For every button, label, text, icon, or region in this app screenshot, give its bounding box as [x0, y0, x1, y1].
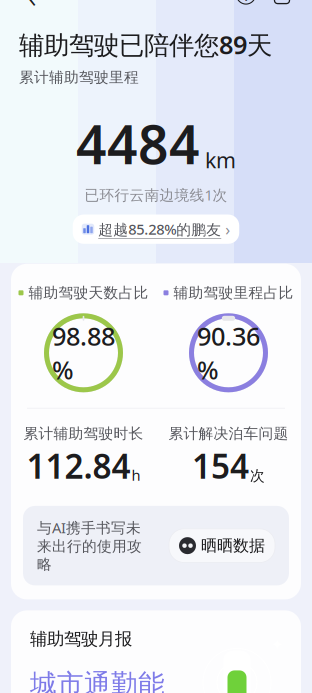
staticText: i — [244, 0, 248, 5]
staticText: 98.88% — [52, 319, 115, 386]
staticText: ‹ — [27, 0, 37, 18]
staticText: h — [131, 465, 140, 485]
staticText: 辅助驾驶已陪伴您89天 — [19, 28, 272, 61]
staticText: 城市通勤能量 — [30, 668, 165, 693]
staticText: 累计辅助驾驶时长 — [23, 425, 143, 443]
staticText: 154 — [192, 444, 249, 488]
staticText: 晒晒数据 — [201, 536, 265, 555]
staticText: 4484 — [76, 108, 200, 179]
button[interactable]: 超越85.28%的鹏友 — [73, 215, 239, 244]
staticText: 辅助驾驶月报 — [30, 628, 132, 650]
staticText: 90.36% — [197, 319, 260, 386]
button[interactable]: 辅助驾驶月报 — [0, 610, 312, 693]
staticText: km — [205, 146, 236, 174]
staticText: 辅助驾驶里程占比 — [173, 284, 293, 302]
staticText: › — [225, 219, 230, 240]
staticText: 已环行云南边境线1次 — [84, 185, 227, 205]
button[interactable]: 晒晒数据 — [169, 529, 275, 562]
staticText: 超越85.28%的鹏友 — [98, 219, 221, 239]
staticText: 112.84 — [26, 444, 130, 488]
button[interactable]: Share — [264, 0, 300, 12]
staticText: 与AI携手书写未来出行的使用攻略 — [37, 518, 142, 573]
button[interactable]: Back — [12, 0, 52, 12]
staticText: ↑ — [274, 0, 289, 2]
staticText: 次 — [250, 467, 265, 485]
staticText: 累计解决泊车问题 — [168, 425, 288, 443]
staticText: 辅助驾驶天数占比 — [28, 284, 148, 302]
staticText: 累计辅助驾驶里程 — [19, 68, 139, 86]
button[interactable]: Information — [228, 0, 264, 12]
